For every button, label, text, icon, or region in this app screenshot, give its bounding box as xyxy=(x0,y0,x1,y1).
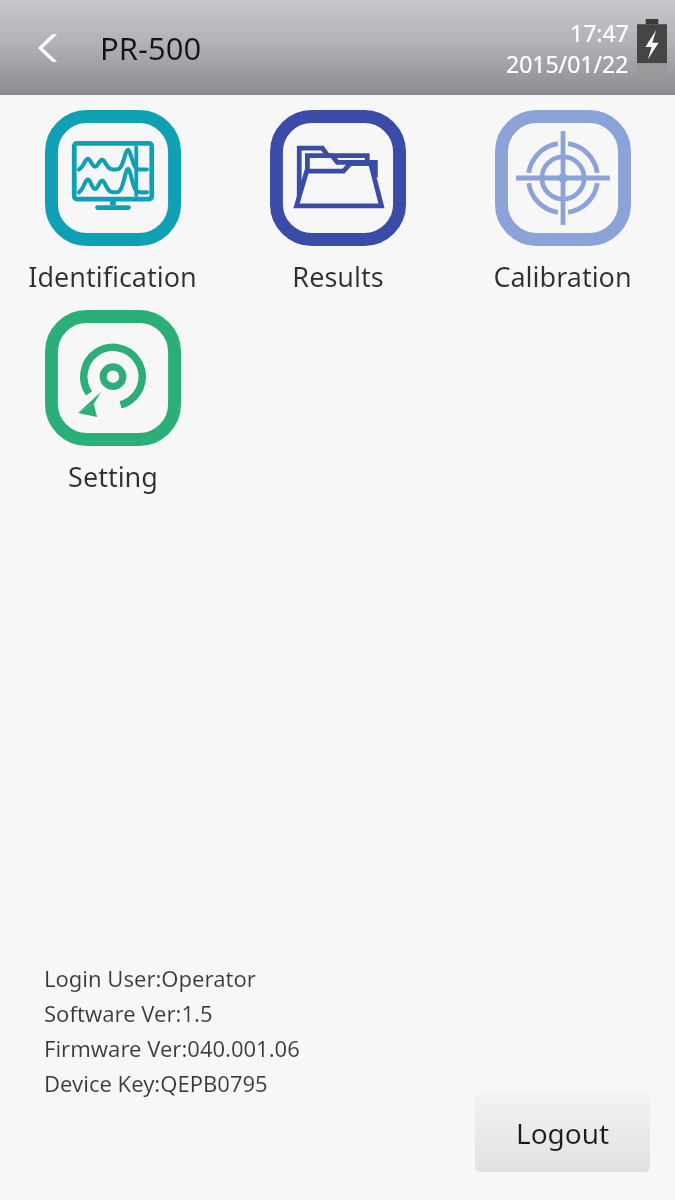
staticText: Software Ver:1.5 xyxy=(44,998,213,1028)
button[interactable]: Results xyxy=(225,95,450,295)
button[interactable]: Identification xyxy=(0,95,225,295)
staticText: Logout xyxy=(516,1114,610,1152)
staticText: Identification xyxy=(28,258,197,295)
button[interactable]: Calibration xyxy=(450,95,675,295)
other: Battery charging xyxy=(637,19,667,77)
staticText: Firmware Ver:040.001.06 xyxy=(44,1033,300,1063)
staticText: 17:47 xyxy=(570,17,629,48)
staticText: Calibration xyxy=(493,258,632,295)
staticText: Login User:Operator xyxy=(44,963,256,993)
staticText: PR-500 xyxy=(100,27,202,69)
staticText: 2015/01/22 xyxy=(506,48,629,79)
staticText: Device Key:QEPB0795 xyxy=(44,1068,268,1098)
button[interactable]: Back xyxy=(22,20,78,76)
button[interactable]: Setting xyxy=(0,295,225,495)
staticText: Setting xyxy=(68,458,158,495)
button[interactable]: Logout xyxy=(475,1093,650,1172)
staticText: Results xyxy=(292,258,384,295)
